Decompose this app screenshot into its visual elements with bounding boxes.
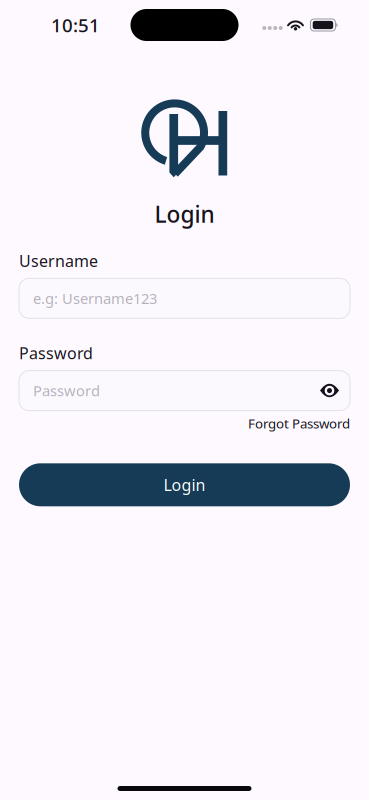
button[interactable]: Login [19,463,350,506]
staticText: Login [154,199,214,229]
staticText: Password [33,381,100,400]
staticText: Forgot Password [248,415,350,432]
staticText: Username [19,250,98,271]
button[interactable]: Password [19,371,350,411]
staticText: 10:51 [51,12,100,37]
button[interactable]: Username [19,278,350,318]
staticText: e.g: Username123 [33,289,157,308]
button[interactable]: Show password [308,371,339,410]
staticText: Login [163,474,205,495]
staticText: Password [19,342,93,363]
button[interactable]: Forgot Password [248,415,350,432]
